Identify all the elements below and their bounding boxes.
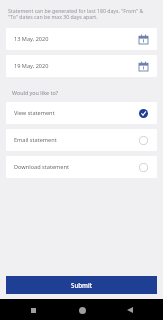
button[interactable]: View statement bbox=[6, 102, 157, 124]
button[interactable]: Back bbox=[123, 303, 137, 317]
staticText: Email statement bbox=[14, 136, 139, 144]
button[interactable]: Pick date bbox=[138, 61, 149, 72]
staticText: Submit bbox=[71, 281, 93, 289]
staticText: Would you like to? bbox=[12, 89, 58, 96]
staticText: 19 May, 2020 bbox=[14, 62, 138, 70]
button[interactable]: 19 May, 2020 bbox=[6, 55, 157, 77]
button[interactable]: 13 May, 2020 bbox=[6, 28, 157, 50]
button[interactable]: Pick date bbox=[138, 34, 149, 45]
staticText: 13 May, 2020 bbox=[14, 35, 138, 43]
button[interactable]: Download statement bbox=[6, 156, 157, 178]
staticText: View statement bbox=[14, 109, 139, 117]
button[interactable]: Home bbox=[75, 303, 89, 317]
button[interactable]: Email statement bbox=[6, 129, 157, 151]
button[interactable]: Recent apps bbox=[26, 303, 40, 317]
button[interactable]: Submit bbox=[6, 276, 157, 294]
staticText: Statement can be generated for last 180 … bbox=[8, 7, 153, 21]
staticText: Download statement bbox=[14, 163, 139, 171]
